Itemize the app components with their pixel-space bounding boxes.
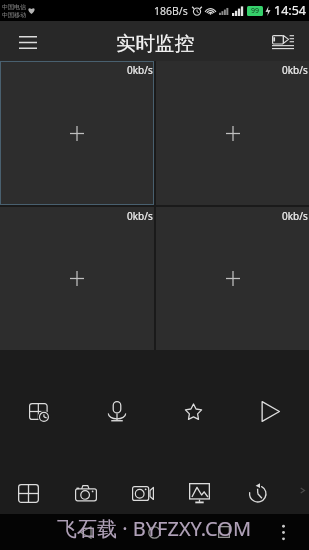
button[interactable]: Menu [9, 23, 46, 60]
staticText: 飞石载 · BYFZXY.COM [57, 515, 252, 542]
button[interactable]: Favorite [155, 378, 232, 438]
button[interactable]: Camera channel [156, 61, 309, 205]
staticText: 0kb/s [127, 63, 153, 77]
button[interactable]: Snapshot [57, 466, 114, 514]
staticText: 中国电信 [2, 3, 26, 11]
staticText: 0kb/s [282, 209, 308, 223]
button[interactable]: Record [114, 466, 171, 514]
button[interactable]: Home [137, 515, 171, 549]
staticText: 实时监控 [116, 31, 194, 56]
staticText: 186B/s [154, 4, 188, 18]
staticText: 0kb/s [282, 63, 308, 77]
button[interactable]: Microphone [78, 378, 155, 438]
button[interactable]: Camera channel [156, 207, 309, 350]
button[interactable]: History [228, 466, 285, 514]
staticText: 0kb/s [127, 209, 153, 223]
button[interactable]: Gallery [171, 466, 228, 514]
button[interactable]: Back [69, 515, 103, 549]
staticText: 中国移动 [2, 11, 26, 19]
button[interactable]: Device list [264, 23, 301, 60]
button[interactable]: Quad view [0, 466, 57, 514]
button[interactable]: More options [272, 521, 294, 543]
button[interactable]: Split screen playback [0, 378, 78, 438]
button[interactable]: Recent apps [207, 515, 241, 549]
staticText: 99 [251, 6, 260, 16]
button[interactable]: Camera channel [0, 61, 154, 205]
staticText: 14:54 [274, 2, 306, 19]
button[interactable]: Play [232, 378, 309, 438]
button[interactable]: Camera channel [0, 207, 154, 350]
